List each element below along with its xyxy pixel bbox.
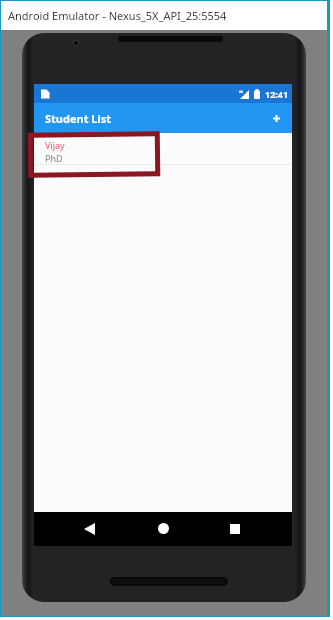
button[interactable]	[84, 523, 95, 535]
button[interactable]: Student List	[34, 103, 292, 133]
button[interactable]	[158, 523, 169, 534]
button[interactable]: Android Emulator - Nexus_5X_API_25:5554	[1, 1, 327, 30]
staticText: Android Emulator - Nexus_5X_API_25:5554	[8, 8, 227, 23]
staticText: Student List	[45, 111, 112, 126]
staticText: PhD	[45, 152, 63, 164]
staticText: 12:41	[265, 88, 289, 100]
staticText: Vijay	[45, 139, 65, 151]
button[interactable]: Vijay	[34, 133, 292, 164]
